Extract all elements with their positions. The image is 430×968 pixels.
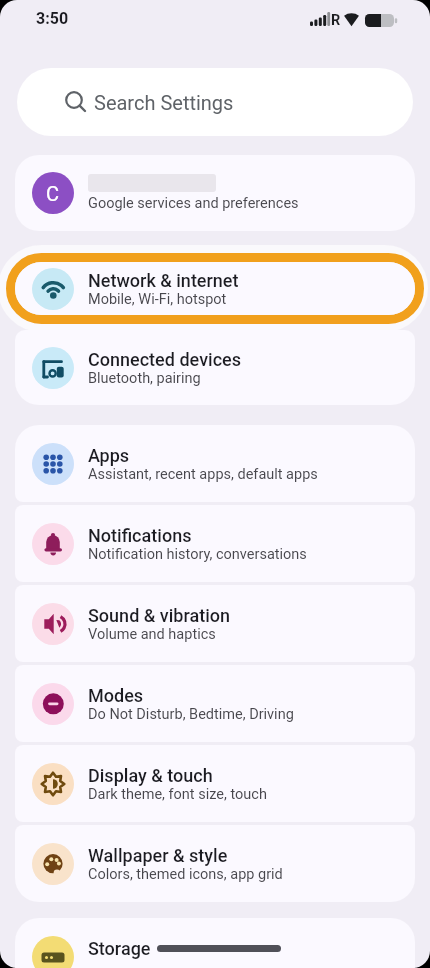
staticText: Assistant, recent apps, default apps xyxy=(88,466,318,483)
staticText: Bluetooth, pairing xyxy=(88,370,201,387)
button[interactable]: Modes xyxy=(15,665,415,742)
button[interactable]: Sound & vibration xyxy=(15,585,415,662)
button[interactable]: Storage xyxy=(15,918,415,968)
staticText: Notifications xyxy=(88,525,192,546)
button[interactable]: C xyxy=(15,155,415,231)
staticText: Volume and haptics xyxy=(88,626,216,643)
button[interactable]: Network & internet xyxy=(15,262,415,315)
staticText: 3:50 xyxy=(36,9,69,28)
staticText: Connected devices xyxy=(88,349,242,370)
button[interactable]: Search Settings xyxy=(17,68,413,136)
staticText: Network & internet xyxy=(88,270,239,291)
button[interactable]: Notifications xyxy=(15,505,415,582)
button[interactable]: Wallpaper & style xyxy=(15,825,415,902)
staticText: Search Settings xyxy=(94,91,234,114)
staticText: Do Not Disturb, Bedtime, Driving xyxy=(88,706,294,723)
button[interactable]: Apps xyxy=(15,425,415,502)
staticText: Display & touch xyxy=(88,765,213,786)
button[interactable]: Connected devices xyxy=(15,330,415,405)
staticText: R xyxy=(331,12,341,29)
staticText: C xyxy=(46,182,60,205)
button[interactable]: Display & touch xyxy=(15,745,415,822)
staticText: Apps xyxy=(88,445,130,466)
staticText: Storage xyxy=(88,938,151,959)
staticText: Colors, themed icons, app grid xyxy=(88,866,283,883)
staticText: Dark theme, font size, touch xyxy=(88,786,267,803)
staticText: Wallpaper & style xyxy=(88,845,228,866)
staticText: Mobile, Wi-Fi, hotspot xyxy=(88,291,227,308)
staticText: Notification history, conversations xyxy=(88,546,307,563)
staticText: Modes xyxy=(88,685,144,706)
staticText: Sound & vibration xyxy=(88,605,231,626)
staticText: Google services and preferences xyxy=(88,195,299,212)
